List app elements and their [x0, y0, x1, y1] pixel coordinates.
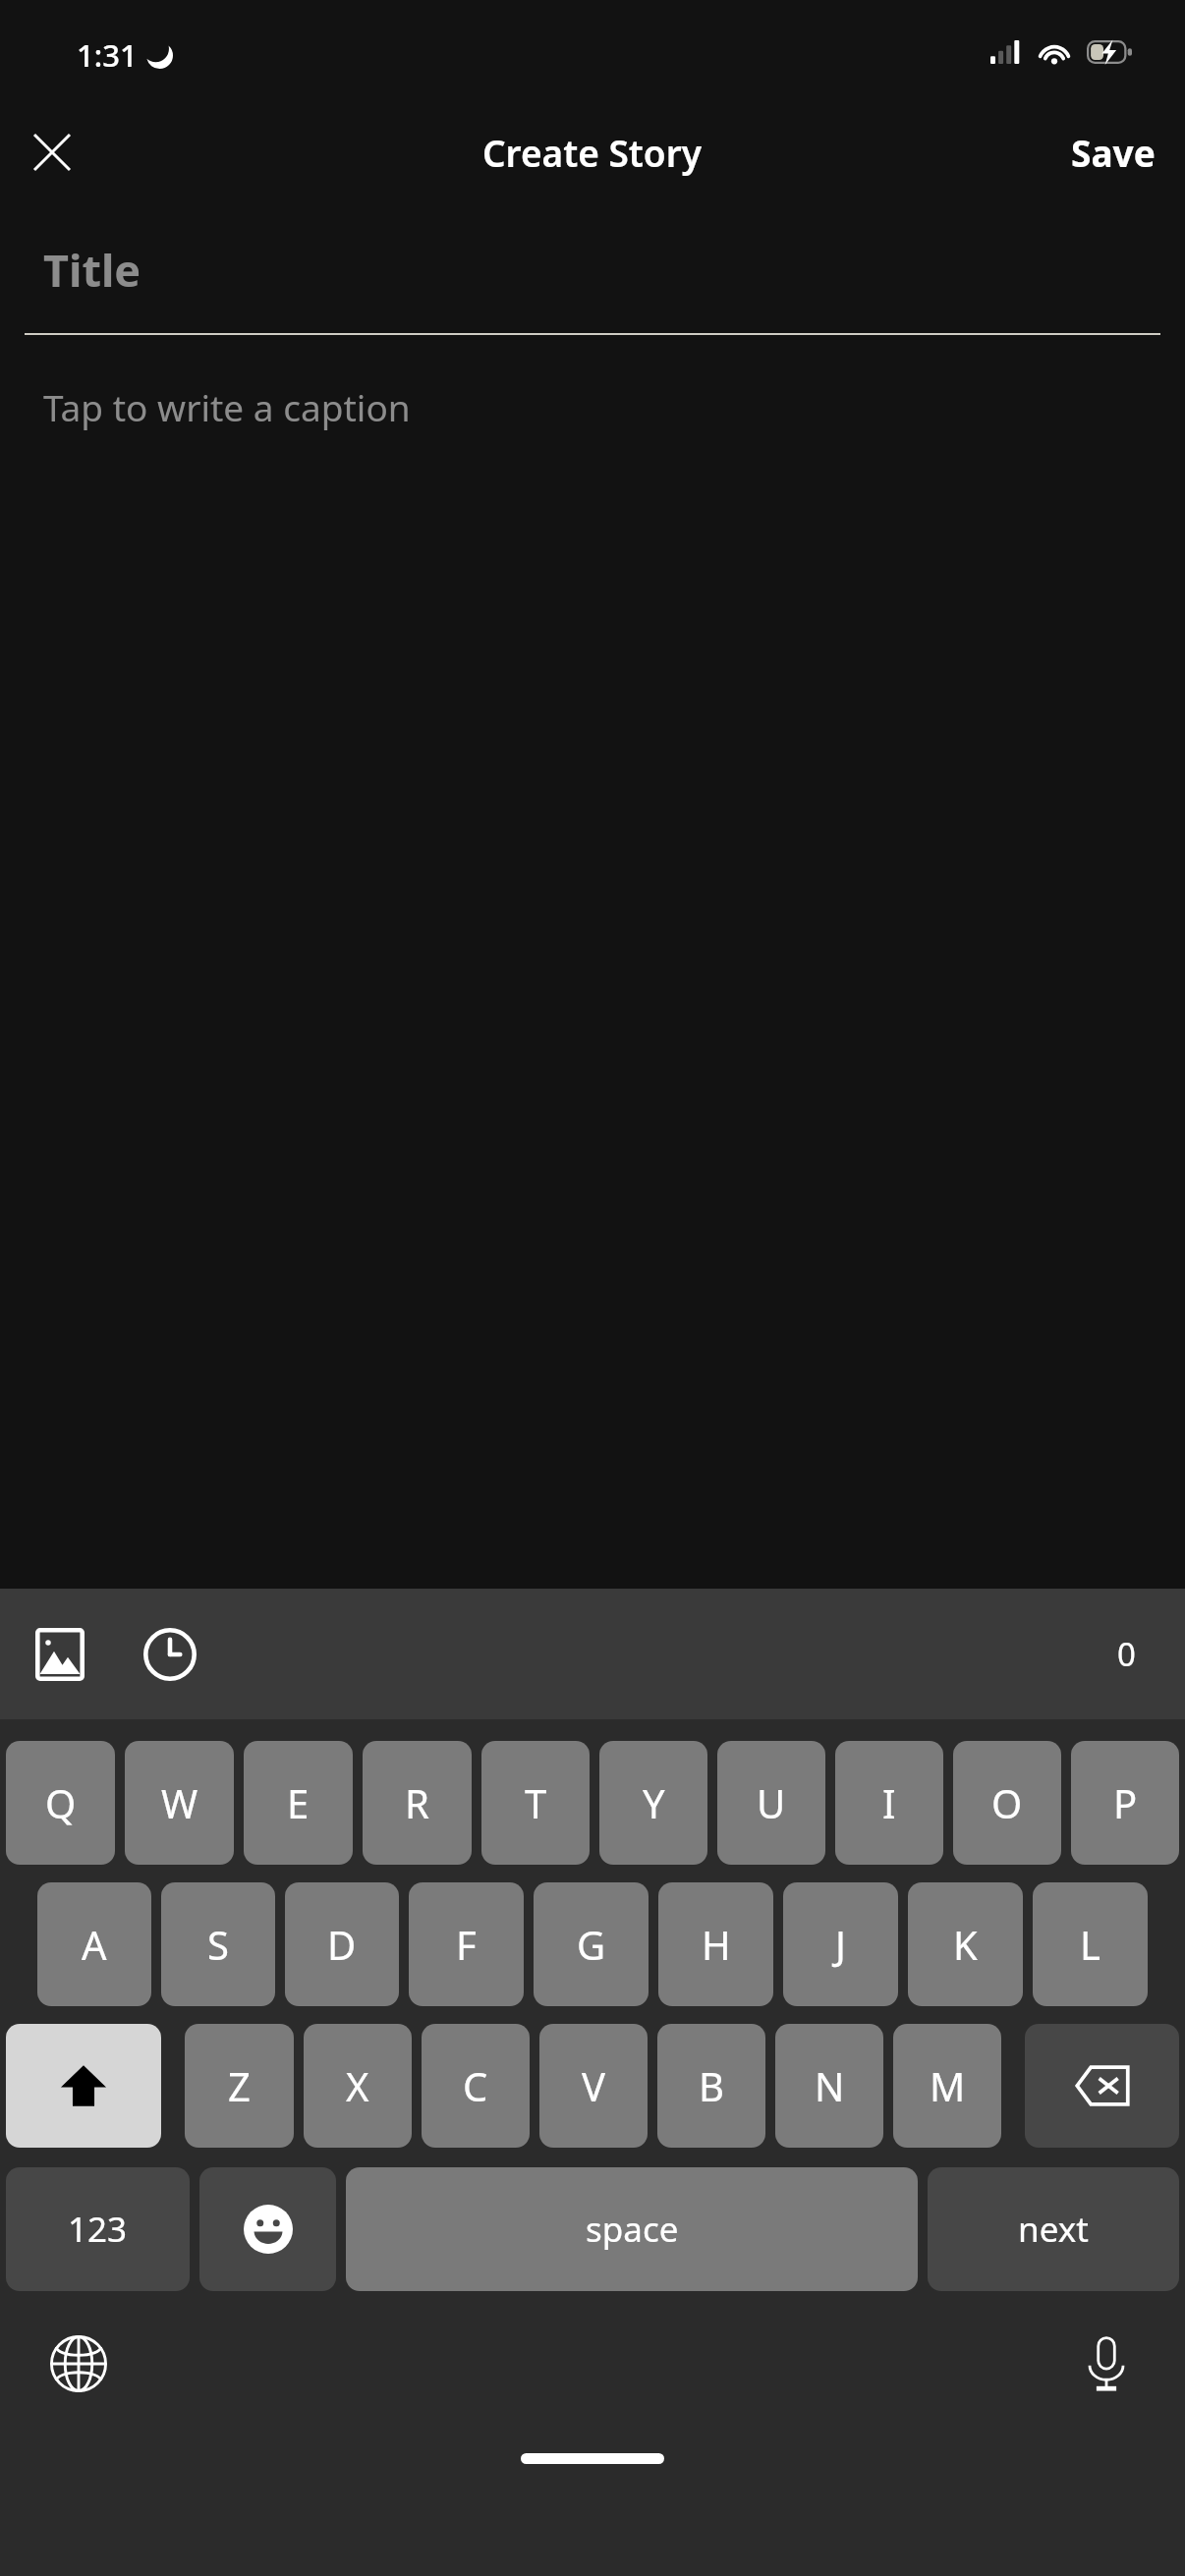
button[interactable]: Save	[1042, 112, 1185, 193]
staticText: O	[991, 1776, 1023, 1829]
button[interactable]: Q	[6, 1741, 115, 1865]
staticText: W	[161, 1776, 198, 1829]
button[interactable]: O	[953, 1741, 1061, 1865]
staticText: 0	[1117, 1632, 1136, 1676]
staticText: Z	[228, 2059, 251, 2112]
button[interactable]: X	[304, 2024, 412, 2148]
button[interactable]: A	[37, 1882, 151, 2006]
button[interactable]: G	[534, 1882, 649, 2006]
staticText: K	[953, 1918, 978, 1971]
button[interactable]: E	[244, 1741, 353, 1865]
staticText: X	[346, 2059, 369, 2112]
staticText: 1:31	[77, 34, 138, 76]
staticText: N	[815, 2059, 845, 2112]
staticText: D	[327, 1918, 357, 1971]
staticText: J	[835, 1918, 846, 1971]
button[interactable]: C	[422, 2024, 530, 2148]
button[interactable]: N	[775, 2024, 883, 2148]
staticText: R	[405, 1776, 429, 1829]
staticText: Y	[643, 1776, 665, 1829]
button[interactable]: Z	[185, 2024, 294, 2148]
button[interactable]: U	[717, 1741, 825, 1865]
staticText: space	[586, 2206, 679, 2253]
staticText: C	[463, 2059, 488, 2112]
button[interactable]: Y	[599, 1741, 707, 1865]
button[interactable]: T	[481, 1741, 590, 1865]
button[interactable]: Backspace	[1025, 2024, 1179, 2148]
button[interactable]: I	[835, 1741, 943, 1865]
staticText: Tap to write a caption	[43, 382, 411, 431]
button[interactable]: Emoji	[199, 2167, 336, 2291]
staticText: V	[582, 2059, 605, 2112]
staticText: H	[702, 1918, 731, 1971]
staticText: 123	[68, 2206, 128, 2253]
staticText: U	[757, 1776, 786, 1829]
staticText: F	[456, 1918, 477, 1971]
staticText: S	[207, 1918, 229, 1971]
staticText: Title	[43, 240, 141, 300]
staticText: next	[1018, 2206, 1089, 2253]
button[interactable]: K	[908, 1882, 1023, 2006]
button[interactable]: 123	[6, 2167, 190, 2291]
button[interactable]: H	[658, 1882, 773, 2006]
button[interactable]: P	[1071, 1741, 1179, 1865]
button[interactable]: next	[928, 2167, 1179, 2291]
button[interactable]: space	[346, 2167, 918, 2291]
button[interactable]: Shift	[6, 2024, 161, 2148]
staticText: P	[1113, 1776, 1138, 1829]
button[interactable]: F	[409, 1882, 524, 2006]
button[interactable]: Title	[25, 232, 1160, 335]
button[interactable]: J	[783, 1882, 898, 2006]
staticText: I	[882, 1776, 896, 1829]
staticText: T	[525, 1776, 547, 1829]
button[interactable]: L	[1033, 1882, 1148, 2006]
staticText: E	[287, 1776, 310, 1829]
staticText: B	[699, 2059, 724, 2112]
button[interactable]: Add image	[16, 1610, 104, 1699]
staticText: G	[577, 1918, 606, 1971]
staticText: Create Story	[482, 128, 703, 177]
button[interactable]: B	[657, 2024, 765, 2148]
staticText: L	[1080, 1918, 1100, 1971]
staticText: A	[82, 1918, 107, 1971]
staticText: Q	[45, 1776, 77, 1829]
button[interactable]: V	[539, 2024, 648, 2148]
button[interactable]: W	[125, 1741, 234, 1865]
button[interactable]: R	[363, 1741, 472, 1865]
staticText: M	[930, 2059, 966, 2112]
button[interactable]: Change language	[33, 2319, 124, 2409]
button[interactable]: Schedule	[126, 1610, 214, 1699]
button[interactable]: Voice input	[1061, 2319, 1152, 2409]
button[interactable]: D	[285, 1882, 399, 2006]
button[interactable]: M	[893, 2024, 1001, 2148]
button[interactable]: Tap to write a caption	[43, 382, 1142, 431]
staticText: Save	[1071, 128, 1156, 177]
button[interactable]: S	[161, 1882, 275, 2006]
button[interactable]: Close	[14, 114, 90, 191]
